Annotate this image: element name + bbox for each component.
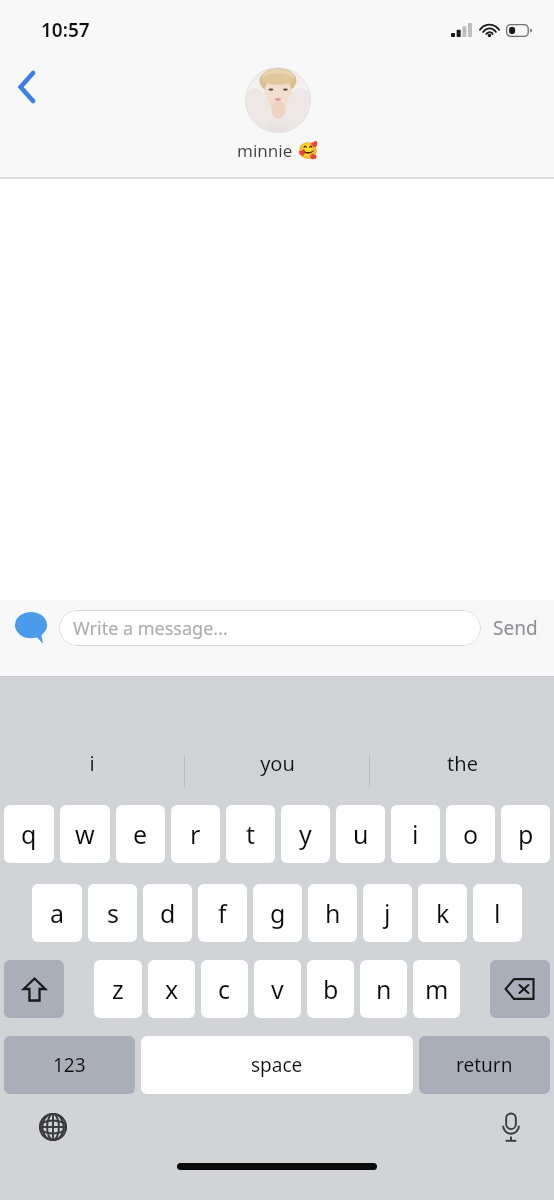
staticText: minnie — [237, 139, 293, 162]
staticText: d — [160, 896, 176, 930]
button[interactable]: return — [419, 1036, 550, 1094]
button[interactable]: o — [446, 805, 495, 863]
staticText: the — [447, 750, 478, 777]
button[interactable]: t — [226, 805, 275, 863]
button[interactable]: Shift — [4, 960, 64, 1018]
staticText: s — [107, 896, 119, 930]
button[interactable]: n — [360, 960, 407, 1018]
staticText: y — [299, 817, 312, 851]
staticText: i — [412, 817, 419, 851]
staticText: q — [21, 817, 37, 851]
button[interactable]: you — [185, 731, 369, 795]
button[interactable]: c — [201, 960, 248, 1018]
button[interactable]: m — [413, 960, 460, 1018]
staticText: i — [89, 750, 95, 777]
button[interactable]: q — [4, 805, 54, 863]
button[interactable]: d — [143, 884, 192, 942]
staticText: 🥰 — [298, 141, 318, 160]
staticText: b — [323, 972, 339, 1006]
button[interactable]: a — [32, 884, 82, 942]
staticText: t — [246, 817, 256, 851]
button[interactable]: Backspace — [490, 960, 550, 1018]
staticText: you — [260, 750, 295, 777]
button[interactable]: Stickers — [13, 610, 49, 646]
button[interactable]: l — [473, 884, 522, 942]
button[interactable]: v — [254, 960, 301, 1018]
button[interactable]: p — [501, 805, 550, 863]
button[interactable]: x — [148, 960, 195, 1018]
button[interactable]: Change keyboard — [30, 1104, 76, 1150]
staticText: n — [376, 972, 392, 1006]
staticText: Send — [493, 615, 538, 641]
button[interactable]: z — [94, 960, 142, 1018]
staticText: h — [325, 896, 341, 930]
staticText: j — [384, 896, 391, 930]
button[interactable]: y — [281, 805, 330, 863]
staticText: x — [165, 972, 179, 1006]
staticText: m — [425, 972, 449, 1006]
button[interactable]: the — [370, 731, 554, 795]
staticText: g — [270, 896, 286, 930]
staticText: f — [218, 896, 227, 930]
staticText: v — [271, 972, 284, 1006]
button[interactable]: 123 — [4, 1036, 135, 1094]
button[interactable]: u — [336, 805, 385, 863]
staticText: 10:57 — [41, 17, 90, 43]
staticText: 123 — [53, 1052, 86, 1078]
button[interactable]: k — [418, 884, 467, 942]
button[interactable]: Back — [4, 64, 50, 110]
staticText: z — [112, 972, 124, 1006]
button[interactable]: minnie — [237, 67, 318, 162]
staticText: o — [463, 817, 479, 851]
button[interactable]: Write a message... — [59, 610, 481, 646]
staticText: p — [518, 817, 534, 851]
button[interactable]: r — [171, 805, 220, 863]
staticText: space — [251, 1052, 303, 1078]
button[interactable]: s — [88, 884, 137, 942]
button[interactable]: b — [307, 960, 354, 1018]
button[interactable]: i — [391, 805, 440, 863]
staticText: a — [50, 896, 65, 930]
staticText: Write a message... — [73, 616, 228, 641]
staticText: return — [456, 1052, 513, 1078]
button[interactable]: h — [308, 884, 357, 942]
staticText: e — [133, 817, 148, 851]
staticText: k — [436, 896, 450, 930]
button[interactable]: w — [60, 805, 110, 863]
button[interactable]: space — [141, 1036, 413, 1094]
staticText: u — [353, 817, 369, 851]
staticText: r — [190, 817, 201, 851]
button[interactable]: e — [116, 805, 165, 863]
staticText: w — [75, 817, 95, 851]
button[interactable]: Send — [481, 615, 540, 641]
button[interactable]: g — [253, 884, 302, 942]
staticText: c — [218, 972, 231, 1006]
staticText: l — [494, 896, 501, 930]
button[interactable]: f — [198, 884, 247, 942]
button[interactable]: Dictation — [488, 1104, 534, 1150]
button[interactable]: j — [363, 884, 412, 942]
button[interactable]: i — [0, 731, 184, 795]
